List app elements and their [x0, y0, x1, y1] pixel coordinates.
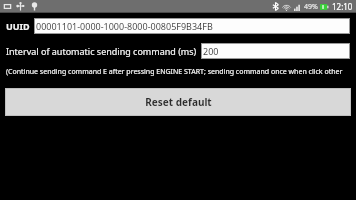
button[interactable]: Reset default	[5, 88, 351, 116]
button[interactable]: 00001101-0000-1000-8000-00805F9B34FB	[34, 18, 350, 34]
staticText: UUID	[6, 20, 30, 32]
button[interactable]: 200	[201, 43, 350, 59]
staticText: 49%	[304, 2, 318, 12]
staticText: Reset default	[145, 95, 212, 109]
staticText: 12:10	[332, 1, 353, 12]
staticText: 200	[203, 45, 219, 57]
staticText: 00001101-0000-1000-8000-00805F9B34FB	[36, 20, 213, 32]
staticText: (Continue sending command E after pressi…	[6, 67, 352, 77]
staticText: Interval of automatic sending command (m…	[6, 45, 197, 57]
